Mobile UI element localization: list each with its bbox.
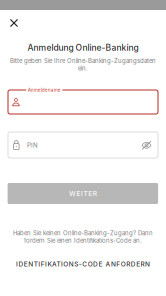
staticText: Haben Sie keinen Online-Banking-Zugang? … bbox=[13, 229, 153, 237]
staticText: Anmeldung Online-Banking bbox=[27, 43, 138, 53]
staticText: fordern Sie einen Identifikations-Code a… bbox=[24, 237, 142, 244]
button[interactable]: WEITER bbox=[8, 183, 158, 204]
staticText: PIN bbox=[27, 142, 38, 149]
button[interactable]: Close bbox=[4, 14, 24, 32]
staticText: IDENTIFIKATIONS-CODE ANFORDERN bbox=[16, 260, 150, 268]
staticText: WEITER bbox=[69, 189, 97, 198]
button[interactable]: IDENTIFIKATIONS-CODE ANFORDERN bbox=[0, 255, 166, 273]
button[interactable]: Show PIN bbox=[138, 137, 154, 153]
staticText: ein. bbox=[78, 65, 88, 72]
staticText: Bitte geben Sie Ihre Online-Banking-Zuga… bbox=[10, 57, 156, 64]
staticText: Anmeldename bbox=[28, 87, 61, 93]
